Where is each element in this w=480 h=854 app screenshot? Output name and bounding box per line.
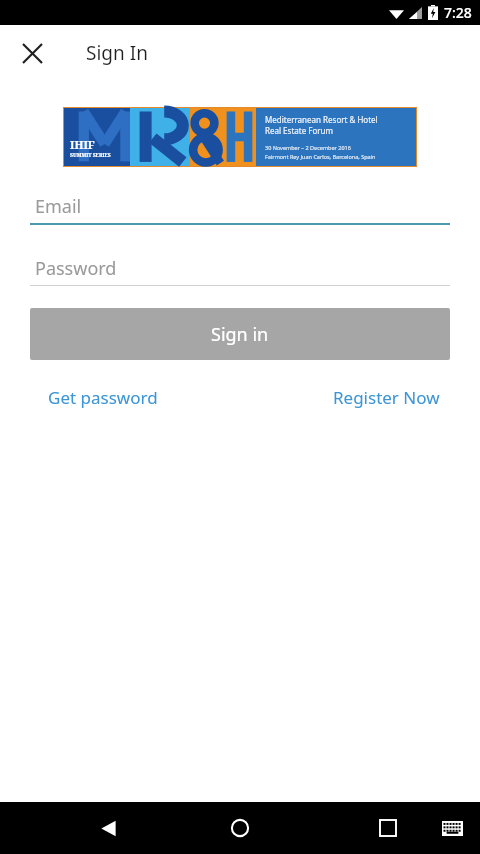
button[interactable]: Home <box>216 804 264 852</box>
button[interactable]: Recents <box>364 804 412 852</box>
staticText: Mediterranean Resort & Hotel <box>265 114 378 125</box>
button[interactable]: Email <box>30 189 450 225</box>
staticText: Fairmont Rey Juan Carlos, Barcelona, Spa… <box>265 153 376 160</box>
staticText: SUMMIT SERIES <box>70 152 111 159</box>
button[interactable]: Sign in <box>30 308 450 360</box>
button[interactable]: Password <box>30 251 450 286</box>
staticText: Password <box>35 256 117 281</box>
staticText: IHIF <box>70 137 95 152</box>
button[interactable]: Back <box>84 804 132 852</box>
button[interactable]: Register Now <box>327 380 446 415</box>
staticText: Email <box>35 194 82 219</box>
button[interactable]: Switch keyboard <box>432 808 472 848</box>
button[interactable]: Get password <box>42 380 164 415</box>
staticText: Register Now <box>333 386 440 409</box>
staticText: Sign In <box>86 40 148 66</box>
staticText: Real Estate Forum <box>265 125 333 136</box>
staticText: 30 November – 2 December 2016 <box>265 144 351 151</box>
staticText: 7:28 <box>444 3 472 22</box>
button[interactable]: Close <box>10 31 54 75</box>
staticText: Get password <box>48 386 158 409</box>
staticText: Sign in <box>211 322 269 347</box>
